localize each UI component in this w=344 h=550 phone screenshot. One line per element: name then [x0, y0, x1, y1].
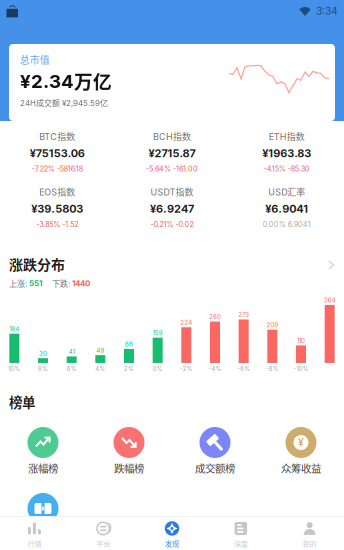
staticText: 平台	[96, 539, 110, 548]
staticText: ¥2.34万亿	[20, 70, 112, 91]
staticText: 24H成交额 ¥2,945.59亿	[20, 98, 108, 107]
button[interactable]	[0, 493, 86, 524]
staticText: 184	[9, 326, 19, 332]
button[interactable]: 涨幅榜	[0, 427, 86, 474]
staticText: 1440	[70, 280, 90, 287]
staticText: -8%	[266, 366, 279, 372]
staticText: 41	[69, 349, 75, 355]
staticText: BTC指数	[39, 131, 75, 141]
staticText: 8%	[38, 366, 48, 372]
staticText: 跌幅榜	[114, 462, 144, 474]
staticText: 273	[238, 312, 249, 318]
staticText: 209	[266, 322, 278, 328]
staticText: USD汇率	[268, 186, 305, 197]
staticText: -4%	[208, 366, 221, 372]
staticText: 榜单	[9, 394, 35, 409]
staticText: 364	[324, 297, 336, 303]
staticText: 总市值	[20, 54, 50, 65]
staticText: ¥6.9247	[150, 204, 194, 214]
staticText: 0.00% 6.9041	[263, 221, 311, 228]
staticText: -0.21% -0.02	[150, 221, 193, 228]
staticText: -10%	[293, 366, 308, 372]
staticText: 成交额榜	[195, 462, 235, 474]
staticText: 发现	[165, 539, 179, 548]
staticText: 下跌:	[42, 279, 70, 288]
button[interactable]: 我的	[275, 517, 344, 550]
button[interactable]: BTC指数	[0, 129, 115, 174]
staticText: -2%	[180, 366, 193, 372]
staticText: 众筹收益	[281, 462, 321, 474]
staticText: 上涨:	[9, 279, 27, 288]
staticText: 深度	[234, 539, 248, 548]
button[interactable]: 平台	[69, 517, 138, 550]
staticText: 10%	[8, 366, 20, 372]
staticText: 3:34	[316, 6, 338, 16]
staticText: ¥6.9041	[265, 204, 308, 214]
staticText: 4%	[95, 366, 105, 372]
staticText: 260	[209, 314, 221, 320]
staticText: 涨幅榜	[28, 462, 58, 474]
staticText: ETH指数	[269, 131, 305, 141]
staticText: 0%	[153, 366, 163, 372]
button[interactable]: ¥	[258, 427, 344, 474]
staticText: -5.64% -161.00	[146, 165, 198, 172]
staticText: 159	[153, 330, 163, 336]
button[interactable]: 查看涨跌分布详情	[328, 256, 335, 270]
button[interactable]: EOS指数	[0, 184, 115, 230]
staticText: -3.85% -1.52	[36, 221, 78, 228]
staticText: ¥	[298, 438, 304, 447]
staticText: 6%	[67, 366, 77, 372]
staticText: -7.22% -5816.18	[32, 165, 83, 172]
staticText: ¥2715.87	[148, 148, 195, 158]
staticText: ¥75153.06	[30, 148, 85, 158]
staticText: 88	[125, 341, 133, 347]
staticText: -6%	[237, 366, 250, 372]
staticText: ¥1963.83	[262, 148, 311, 158]
button[interactable]: 行情	[0, 517, 69, 550]
staticText: 551	[27, 280, 42, 287]
button[interactable]: 深度	[206, 517, 275, 550]
staticText: EOS指数	[39, 186, 75, 197]
staticText: 30	[39, 350, 47, 357]
staticText: 110	[297, 338, 305, 344]
button[interactable]: USD汇率	[229, 184, 344, 230]
button[interactable]: 成交额榜	[172, 427, 258, 474]
staticText: BCH指数	[153, 131, 191, 141]
button[interactable]: 发现	[138, 517, 206, 550]
staticText: 我的	[303, 539, 317, 548]
staticText: USDT指数	[150, 186, 193, 197]
button[interactable]: BCH指数	[115, 129, 229, 174]
staticText: 行情	[27, 539, 41, 548]
button[interactable]: 跌幅榜	[86, 427, 172, 474]
staticText: 224	[180, 319, 192, 326]
button[interactable]: ETH指数	[229, 129, 344, 174]
button[interactable]: USDT指数	[115, 184, 229, 230]
staticText: -4.15% -85.30	[264, 165, 310, 172]
staticText: 2%	[124, 366, 134, 372]
staticText: ¥39.5803	[31, 204, 83, 214]
staticText: 涨跌分布	[9, 256, 65, 272]
staticText: 49	[96, 347, 104, 354]
